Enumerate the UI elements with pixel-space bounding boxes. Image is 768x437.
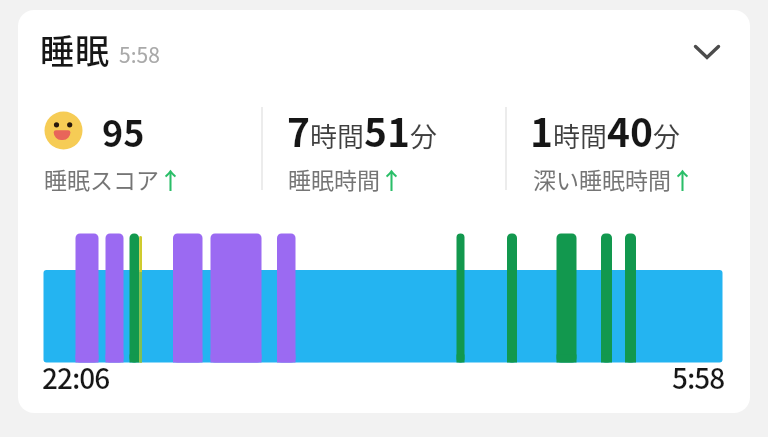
staticText: 95 [102, 105, 145, 157]
staticText: ↑ [671, 162, 694, 195]
staticText: 睡眠時間 [288, 162, 380, 195]
staticText: 睡眠スコア [44, 162, 159, 195]
staticText: 5:58 [672, 357, 725, 398]
staticText: 睡眠 [40, 25, 110, 74]
staticText: 5:58 [119, 39, 160, 69]
button[interactable]: 睡眠 [18, 10, 750, 413]
staticText: 22:06 [42, 357, 110, 398]
staticText: ↑ [380, 162, 403, 195]
button[interactable] [694, 44, 720, 60]
staticText: ↑ [159, 162, 182, 195]
staticText: 7時間51分 [287, 102, 438, 158]
staticText: 1時間40分 [530, 102, 681, 158]
staticText: 深い睡眠時間 [533, 162, 671, 195]
